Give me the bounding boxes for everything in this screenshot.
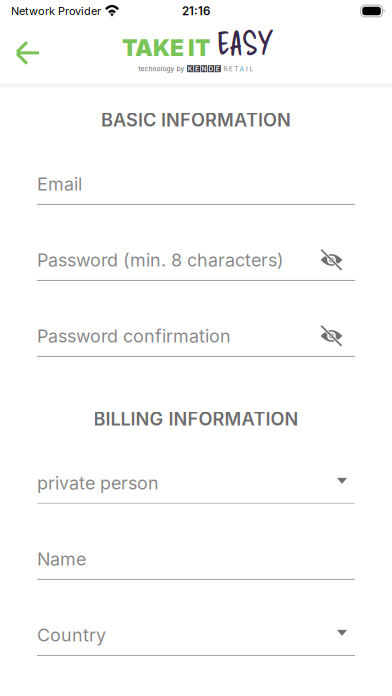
staticText: BILLING INFORMATION xyxy=(93,408,298,430)
staticText: Country xyxy=(37,624,106,646)
staticText: T xyxy=(234,65,238,73)
staticText: D xyxy=(208,65,213,73)
button[interactable]: Show password xyxy=(320,324,355,348)
staticText: EASY xyxy=(217,23,270,62)
staticText: Password confirmation xyxy=(37,325,231,347)
staticText: E xyxy=(216,65,220,73)
staticText: Name xyxy=(37,548,86,570)
staticText: A xyxy=(240,65,245,73)
staticText: L xyxy=(249,65,253,73)
staticText: Email xyxy=(37,173,82,195)
staticText: R xyxy=(223,65,227,73)
button[interactable]: Show password xyxy=(320,248,355,272)
button[interactable]: Back xyxy=(0,23,54,83)
staticText: E xyxy=(195,65,199,73)
staticText: N xyxy=(201,65,206,73)
staticText: I xyxy=(246,65,248,73)
staticText: Password (min. 8 characters) xyxy=(37,249,284,271)
staticText: E xyxy=(229,65,233,73)
staticText: Network Provider xyxy=(11,4,101,18)
staticText: 21:16 xyxy=(182,4,210,18)
staticText: TAKE IT xyxy=(122,34,210,62)
staticText: BASIC INFORMATION xyxy=(101,109,291,131)
staticText: technology by xyxy=(139,65,185,73)
staticText: K xyxy=(188,65,193,73)
staticText: private person xyxy=(37,472,159,494)
